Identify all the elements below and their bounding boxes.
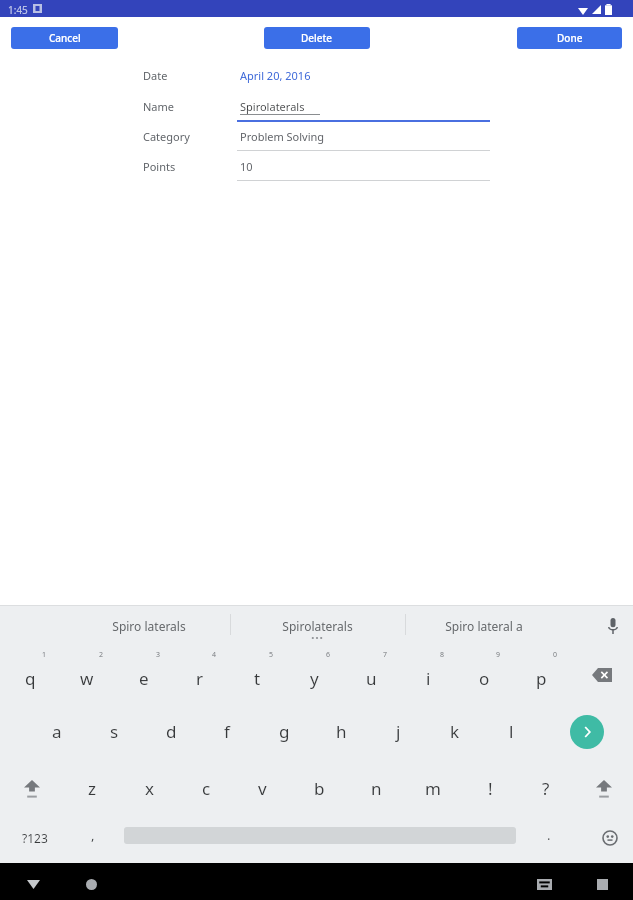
button[interactable]: u	[345, 647, 397, 702]
button[interactable]: ?123	[6, 818, 64, 858]
staticText: 8	[440, 650, 445, 660]
staticText: 2	[99, 650, 104, 660]
staticText: 4	[212, 650, 217, 660]
button[interactable]: !	[464, 761, 516, 816]
button[interactable]: Delete	[264, 27, 370, 49]
button[interactable]: s	[88, 704, 140, 759]
staticText: g	[279, 720, 290, 743]
button[interactable]: z	[66, 761, 118, 816]
staticText: j	[396, 720, 401, 743]
staticText: n	[371, 777, 382, 800]
button[interactable]: f	[201, 704, 253, 759]
staticText: y	[310, 667, 319, 690]
button[interactable]: y	[288, 647, 340, 702]
button[interactable]: a	[31, 704, 83, 759]
staticText: Category	[143, 129, 190, 144]
staticText: p	[536, 667, 547, 690]
staticText: a	[52, 720, 62, 743]
staticText: f	[224, 720, 230, 743]
staticText: e	[139, 667, 149, 690]
staticText: ?123	[22, 830, 48, 846]
button[interactable]: r	[174, 647, 226, 702]
staticText: Spirolaterals	[282, 618, 353, 634]
button[interactable]: Emoji	[590, 818, 630, 858]
staticText: Problem Solving	[240, 129, 325, 144]
staticText: !	[488, 777, 493, 800]
button[interactable]: Done	[517, 27, 622, 49]
button[interactable]: Spiro lateral a	[399, 607, 569, 644]
staticText: 7	[383, 650, 388, 660]
staticText: v	[258, 777, 267, 800]
staticText: h	[336, 720, 347, 743]
button[interactable]: g	[258, 704, 310, 759]
button[interactable]: Shift	[6, 761, 58, 816]
button[interactable]: k	[429, 704, 481, 759]
button[interactable]: t	[231, 647, 283, 702]
button[interactable]: ,	[70, 818, 116, 858]
button[interactable]: Spirolaterals	[232, 607, 402, 644]
button[interactable]: p	[515, 647, 567, 702]
staticText: Cancel	[49, 31, 81, 45]
staticText: Date	[143, 68, 168, 83]
staticText: o	[479, 667, 490, 690]
staticText: 1	[42, 650, 47, 660]
staticText: Spirolaterals	[240, 99, 305, 114]
button[interactable]: Switch keyboard	[527, 867, 561, 900]
button[interactable]: j	[372, 704, 424, 759]
staticText: .	[547, 826, 551, 844]
staticText: u	[366, 667, 377, 690]
staticText: 0	[553, 650, 558, 660]
staticText: April 20, 2016	[240, 68, 311, 83]
staticText: z	[88, 777, 96, 800]
button[interactable]: e	[118, 647, 170, 702]
staticText: 1:45	[8, 3, 28, 17]
staticText: Points	[143, 159, 176, 174]
button[interactable]: l	[485, 704, 537, 759]
staticText: w	[80, 667, 94, 690]
button[interactable]: Spirolaterals	[237, 93, 490, 121]
button[interactable]: Spiro laterals	[64, 607, 234, 644]
button[interactable]: Enter	[565, 704, 609, 759]
button[interactable]: d	[145, 704, 197, 759]
button[interactable]: 10	[237, 153, 490, 181]
staticText: 3	[156, 650, 161, 660]
button[interactable]: ?	[520, 761, 572, 816]
staticText: q	[25, 667, 36, 690]
button[interactable]: m	[407, 761, 459, 816]
staticText: Name	[143, 99, 175, 114]
button[interactable]: v	[236, 761, 288, 816]
button[interactable]: w	[61, 647, 113, 702]
staticText: Delete	[301, 31, 333, 45]
button[interactable]: q	[4, 647, 56, 702]
button[interactable]: x	[123, 761, 175, 816]
button[interactable]: Problem Solving	[237, 123, 490, 151]
button[interactable]: h	[315, 704, 367, 759]
staticText: m	[425, 777, 441, 800]
button[interactable]: n	[350, 761, 402, 816]
staticText: t	[254, 667, 261, 690]
button[interactable]: o	[458, 647, 510, 702]
staticText: 9	[496, 650, 501, 660]
button[interactable]: c	[180, 761, 232, 816]
staticText: 6	[326, 650, 331, 660]
staticText: i	[426, 667, 431, 690]
staticText: b	[314, 777, 325, 800]
button[interactable]: Home	[74, 867, 108, 900]
button[interactable]: i	[402, 647, 454, 702]
staticText: k	[450, 720, 460, 743]
button[interactable]: Voice input	[596, 609, 630, 643]
staticText: ,	[91, 826, 95, 844]
button[interactable]: Shift	[578, 761, 630, 816]
staticText: d	[166, 720, 177, 743]
button[interactable]: .	[527, 818, 571, 858]
button[interactable]: Hide keyboard	[16, 867, 50, 900]
button[interactable]: b	[293, 761, 345, 816]
button[interactable]: Backspace	[580, 647, 624, 702]
staticText: l	[509, 720, 514, 743]
staticText: Spiro laterals	[112, 618, 186, 634]
button[interactable]: April 20, 2016	[237, 62, 490, 90]
button[interactable]: Cancel	[11, 27, 118, 49]
button[interactable]: Recent apps	[585, 867, 619, 900]
staticText: 5	[269, 650, 274, 660]
